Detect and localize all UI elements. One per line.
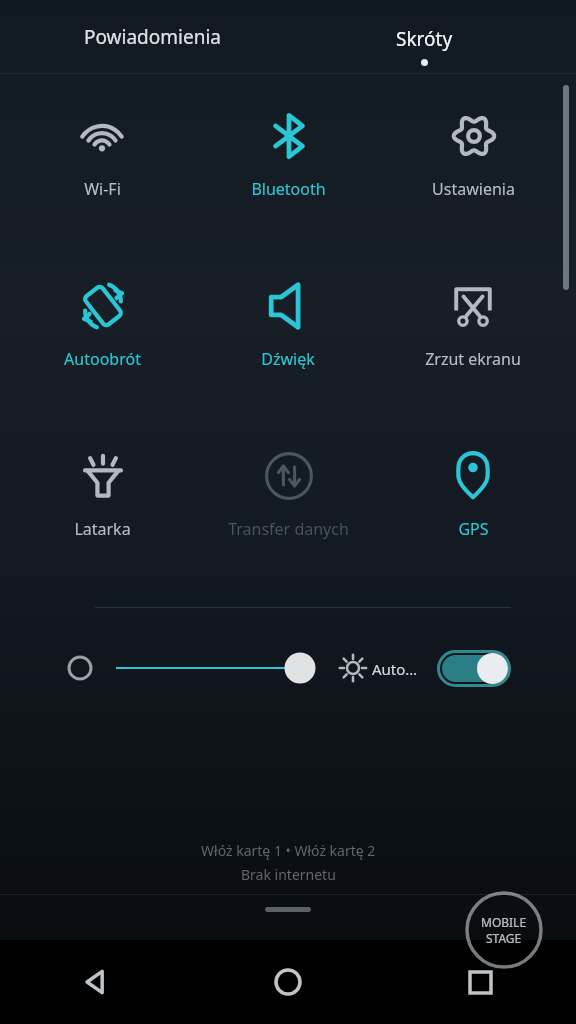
staticText: Dźwięk — [261, 348, 315, 370]
button[interactable]: Recents — [384, 940, 576, 1024]
button[interactable]: Back — [0, 940, 192, 1024]
button[interactable]: Auto brightness toggle — [437, 650, 511, 687]
staticText: Ustawienia — [432, 178, 515, 200]
button[interactable]: Powiadomienia — [16, 0, 288, 73]
button[interactable]: Skróty — [288, 0, 560, 73]
staticText: Auto… — [372, 659, 418, 679]
button[interactable]: Zrzut ekranu — [381, 264, 565, 400]
button[interactable]: Auto… — [372, 655, 418, 683]
button[interactable]: Latarka — [10, 434, 194, 570]
button[interactable]: Wi-Fi — [10, 94, 194, 230]
staticText: Wi-Fi — [84, 178, 121, 200]
staticText: STAGE — [486, 930, 522, 946]
button[interactable]: GPS — [381, 434, 565, 570]
button[interactable]: Bluetooth — [196, 94, 380, 230]
button[interactable]: Autoobrót — [10, 264, 194, 400]
button[interactable]: Transfer danych — [196, 434, 380, 570]
staticText: MOBILE — [481, 914, 527, 930]
button[interactable]: Low brightness — [67, 655, 93, 681]
staticText: Skróty — [396, 26, 453, 52]
staticText: Zrzut ekranu — [425, 348, 521, 370]
staticText: Bluetooth — [251, 178, 326, 200]
button[interactable]: Home — [192, 940, 384, 1024]
staticText: GPS — [458, 518, 489, 540]
staticText: Autoobrót — [64, 348, 141, 370]
staticText: Latarka — [74, 518, 131, 540]
staticText: Włóż kartę 1 • Włóż kartę 2 — [201, 841, 376, 860]
button[interactable]: Dźwięk — [196, 264, 380, 400]
staticText: Brak internetu — [241, 865, 336, 884]
button[interactable]: Auto brightness icon — [338, 653, 368, 683]
button[interactable]: Brightness slider — [112, 648, 324, 688]
button[interactable]: Ustawienia — [381, 94, 565, 230]
staticText: Transfer danych — [228, 518, 349, 540]
staticText: Powiadomienia — [84, 24, 221, 50]
